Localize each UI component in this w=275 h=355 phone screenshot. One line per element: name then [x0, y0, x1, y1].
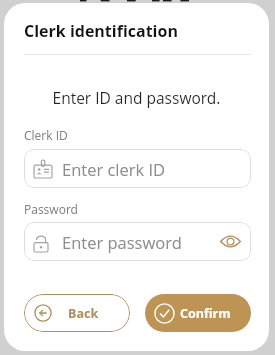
staticText: Back — [68, 305, 99, 322]
button[interactable]: Back — [24, 294, 130, 332]
staticText: Enter password — [62, 231, 220, 253]
staticText: Password — [24, 201, 78, 217]
button[interactable]: Enter password — [24, 222, 251, 261]
staticText: Enter ID and password. — [4, 87, 269, 108]
button[interactable]: Confirm — [145, 294, 251, 332]
staticText: Confirm — [180, 305, 231, 322]
staticText: Clerk identification — [24, 20, 178, 42]
staticText: Enter clerk ID — [62, 158, 241, 180]
button[interactable]: Enter clerk ID — [24, 149, 251, 188]
staticText: Clerk ID — [24, 127, 68, 143]
other: Show password — [220, 235, 241, 248]
